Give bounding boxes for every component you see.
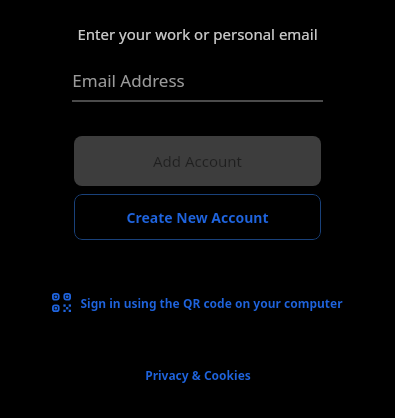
staticText: Privacy & Cookies bbox=[145, 367, 251, 383]
button[interactable]: Add Account bbox=[74, 136, 321, 186]
staticText: Email Address bbox=[72, 69, 185, 92]
staticText: Create New Account bbox=[126, 208, 269, 227]
button[interactable]: Email Address bbox=[72, 69, 323, 102]
button[interactable]: Privacy & Cookies bbox=[137, 363, 259, 387]
staticText: Sign in using the QR code on your comput… bbox=[80, 295, 343, 311]
button[interactable]: Sign in with QR code bbox=[48, 289, 347, 316]
staticText: Add Account bbox=[153, 151, 242, 171]
button[interactable]: Create New Account bbox=[74, 194, 321, 240]
other: Sign in with QR code bbox=[52, 293, 71, 312]
staticText: Enter your work or personal email bbox=[77, 24, 318, 44]
